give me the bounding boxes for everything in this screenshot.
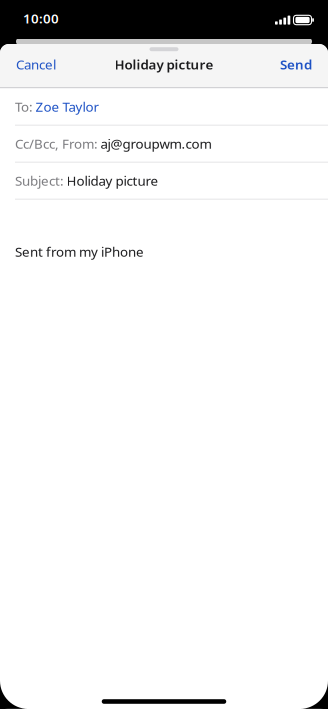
- button[interactable]: Cc/Bcc, From:: [0, 126, 328, 163]
- staticText: Cancel: [16, 55, 56, 73]
- button[interactable]: Sent from my iPhone: [0, 200, 328, 260]
- staticText: Holiday picture: [114, 55, 213, 73]
- button[interactable]: Cancel: [13, 50, 59, 78]
- staticText: 10:00: [23, 9, 59, 27]
- button[interactable]: Send: [277, 50, 315, 78]
- button[interactable]: Subject:: [0, 163, 328, 200]
- staticText: Holiday picture: [66, 172, 158, 189]
- staticText: Zoe Taylor: [35, 98, 99, 115]
- staticText: Cc/Bcc, From:: [15, 135, 98, 152]
- button[interactable]: To:: [0, 89, 328, 126]
- staticText: To:: [15, 98, 33, 115]
- staticText: aj@groupwm.com: [100, 135, 211, 152]
- staticText: Sent from my iPhone: [15, 243, 144, 260]
- staticText: Subject:: [15, 172, 64, 189]
- staticText: Send: [280, 55, 312, 73]
